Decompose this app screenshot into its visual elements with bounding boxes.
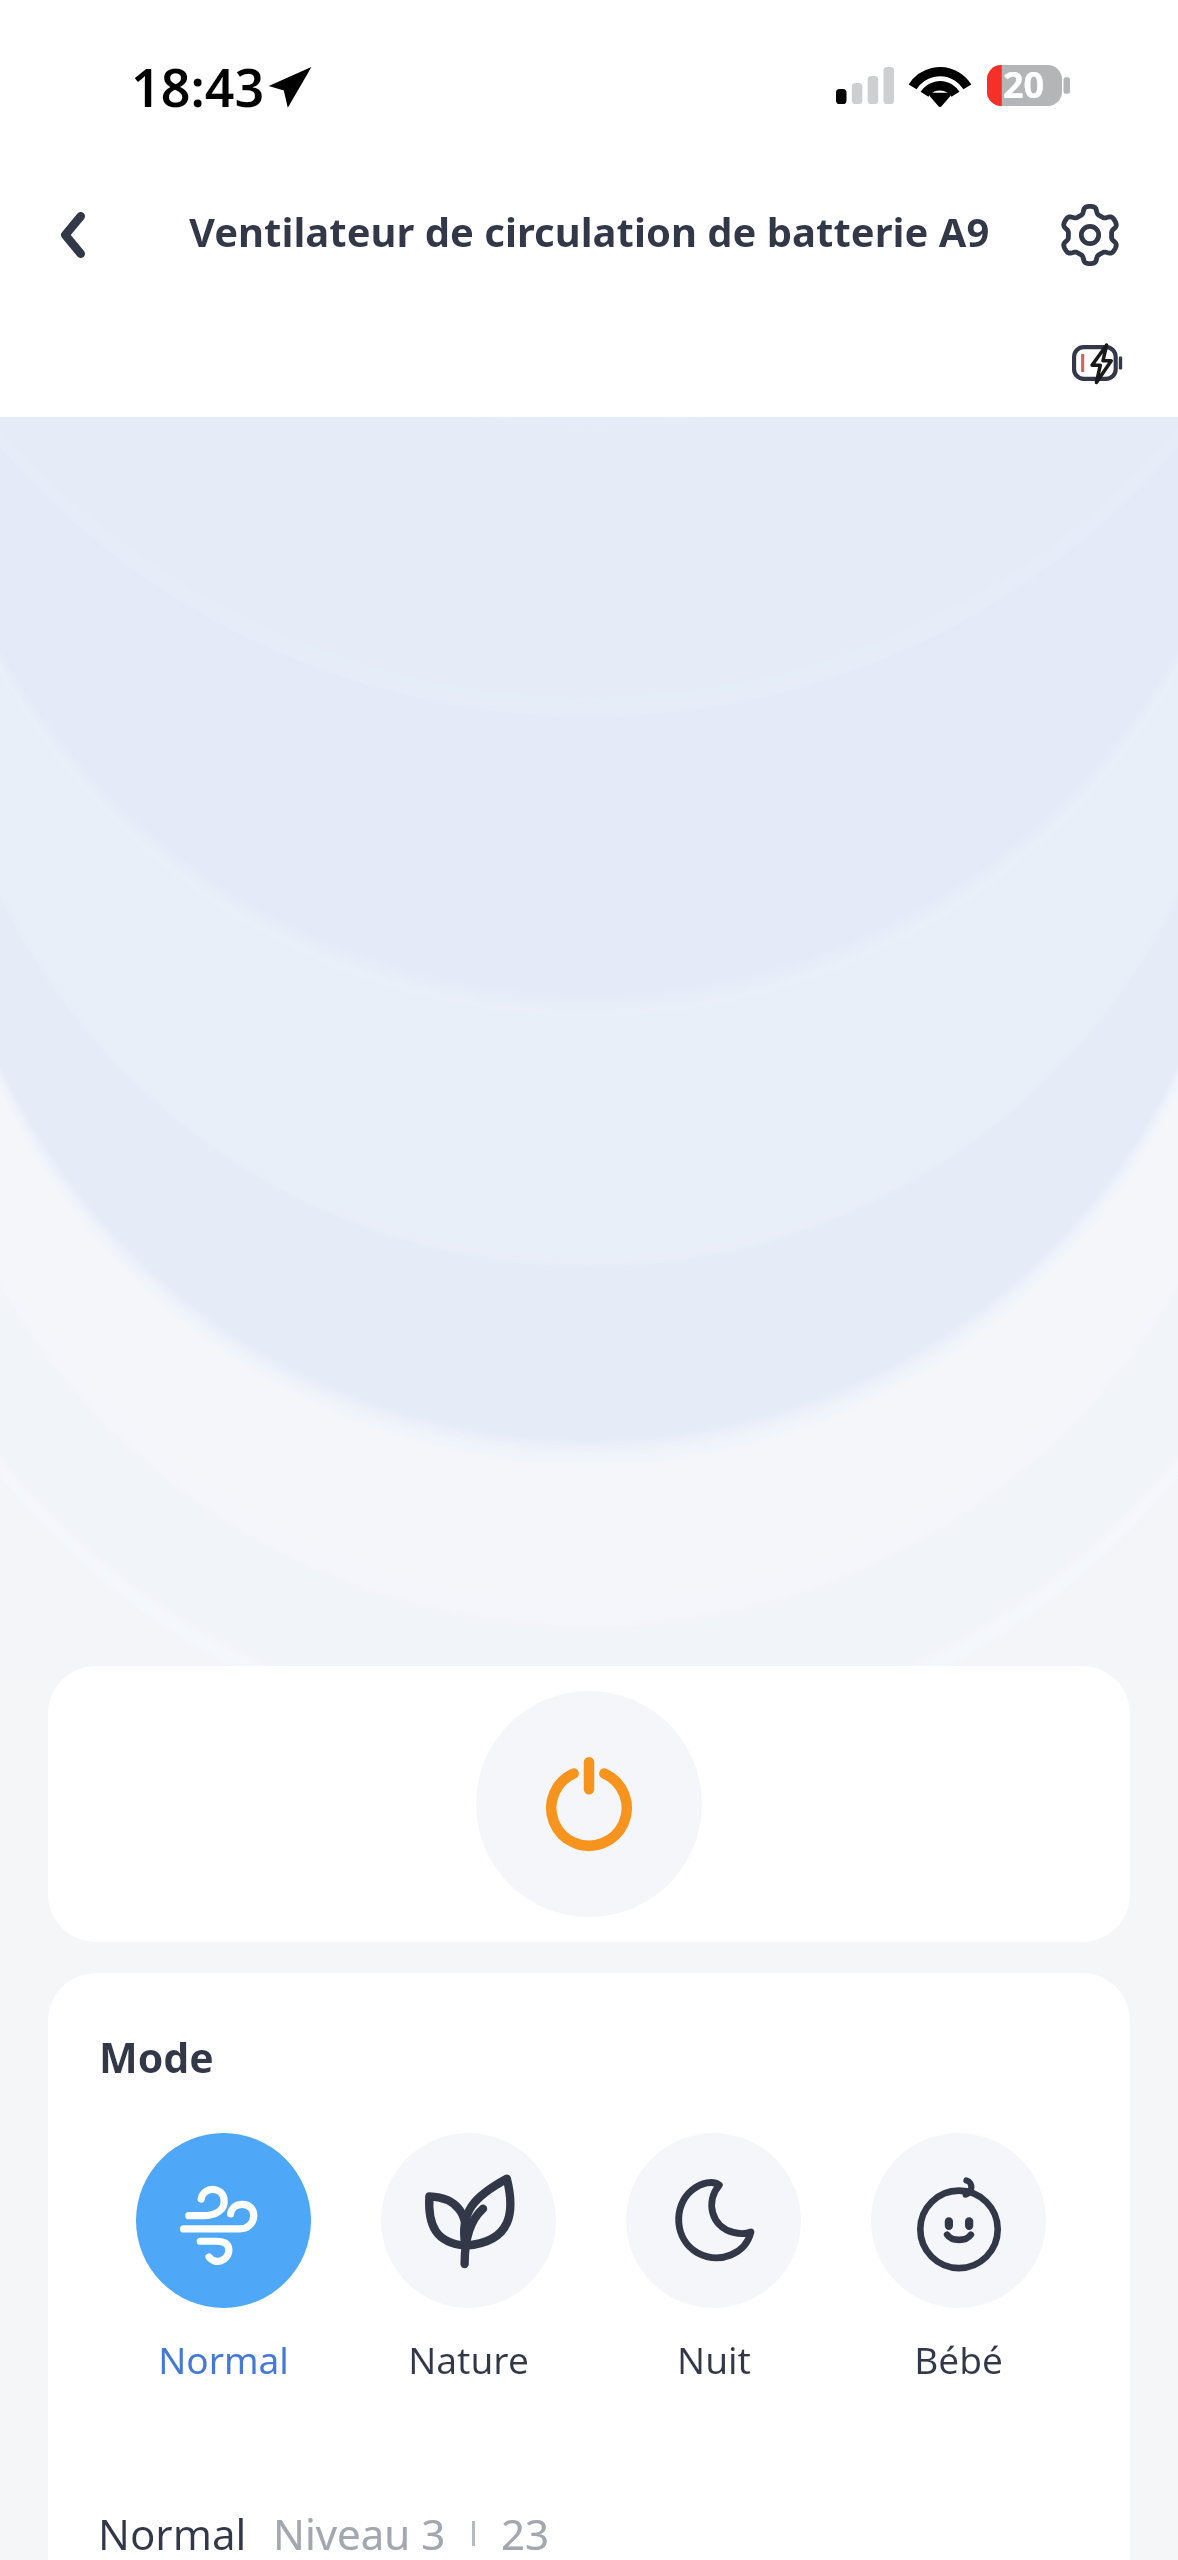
staticText: Bébé (914, 2334, 1003, 2384)
button[interactable]: Bébé (836, 2133, 1081, 2384)
staticText: Normal (158, 2334, 289, 2384)
staticText: 23 (501, 2505, 550, 2560)
staticText: Nature (408, 2334, 529, 2384)
button[interactable]: Nuit (591, 2133, 836, 2384)
staticText: Nuit (677, 2334, 751, 2384)
button[interactable]: Nature (346, 2133, 591, 2384)
button[interactable]: Normal (101, 2133, 346, 2384)
button[interactable]: Battery charging (1053, 318, 1143, 408)
staticText: Niveau 3 (273, 2505, 446, 2560)
staticText: Normal (98, 2505, 247, 2560)
button[interactable]: Power (476, 1691, 702, 1917)
staticText: Mode (99, 2029, 214, 2085)
button[interactable]: Settings (1035, 180, 1145, 290)
staticText: Ventilateur de circulation de batterie A… (189, 204, 990, 258)
staticText: 18:43 (131, 51, 265, 122)
staticText: 20 (1003, 60, 1045, 109)
button[interactable]: Back (23, 185, 123, 285)
